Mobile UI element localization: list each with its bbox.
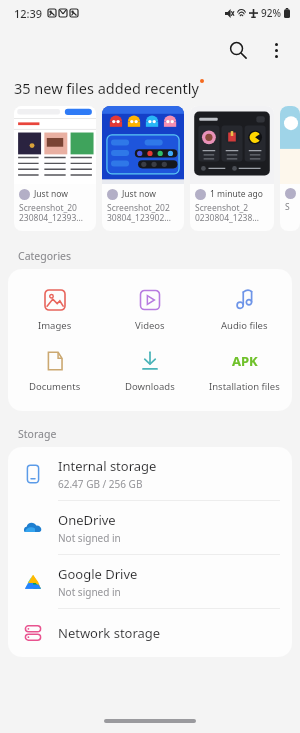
- button[interactable]: Internal storage: [8, 447, 292, 500]
- staticText: 12:39: [14, 6, 43, 21]
- button[interactable]: S: [280, 106, 300, 231]
- button[interactable]: Just now: [14, 106, 96, 231]
- button[interactable]: Audio files: [197, 279, 292, 340]
- staticText: Downloads: [125, 380, 175, 393]
- button[interactable]: Downloads: [102, 340, 197, 401]
- button[interactable]: 1 minute ago: [190, 106, 274, 231]
- staticText: Categories: [18, 249, 72, 263]
- staticText: OneDrive: [58, 511, 116, 529]
- staticText: S: [285, 201, 290, 213]
- staticText: Just now: [122, 188, 156, 200]
- button[interactable]: OneDrive: [8, 501, 292, 554]
- staticText: Screenshot_2 0230804_1238…: [195, 202, 259, 223]
- button[interactable]: Documents: [8, 340, 102, 401]
- staticText: Google Drive: [58, 565, 138, 583]
- staticText: Storage: [18, 427, 57, 441]
- staticText: Documents: [29, 380, 81, 393]
- staticText: Not signed in: [58, 585, 121, 599]
- button[interactable]: APK: [197, 340, 292, 401]
- staticText: 62.47 GB / 256 GB: [58, 477, 143, 491]
- staticText: APK: [232, 352, 258, 370]
- staticText: 92%: [261, 6, 281, 20]
- button[interactable]: Search: [218, 30, 258, 70]
- staticText: Internal storage: [58, 457, 157, 475]
- button[interactable]: Images: [8, 279, 102, 340]
- staticText: Just now: [34, 188, 68, 200]
- button[interactable]: Videos: [102, 279, 197, 340]
- button[interactable]: Google Drive: [8, 555, 292, 608]
- staticText: 35 new files added recently: [14, 78, 199, 98]
- button[interactable]: Just now: [102, 106, 184, 231]
- staticText: Videos: [135, 319, 165, 332]
- button[interactable]: More options: [258, 32, 294, 68]
- button[interactable]: Network storage: [8, 609, 292, 657]
- staticText: Installation files: [209, 380, 280, 393]
- staticText: 1 minute ago: [210, 188, 263, 200]
- staticText: Images: [38, 319, 72, 332]
- staticText: Not signed in: [58, 531, 121, 545]
- staticText: Screenshot_202 30804_123902…: [107, 202, 171, 223]
- staticText: Audio files: [221, 319, 268, 332]
- staticText: Network storage: [58, 624, 161, 642]
- staticText: Screenshot_20 230804_12393…: [19, 202, 83, 223]
